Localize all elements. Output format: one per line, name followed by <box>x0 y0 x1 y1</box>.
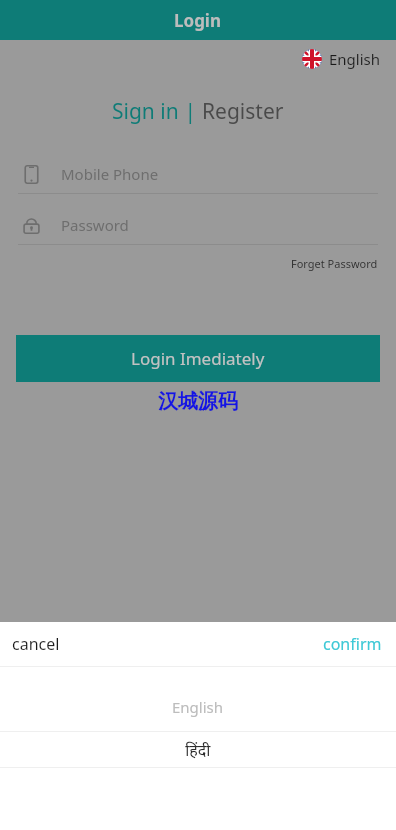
staticText: Login Imediately <box>131 347 265 370</box>
other: Password <box>22 216 41 235</box>
other: Phone <box>22 165 41 184</box>
staticText: | <box>179 97 202 126</box>
button[interactable]: Login Imediately <box>16 335 380 382</box>
staticText: English <box>329 49 381 69</box>
staticText: confirm <box>323 633 382 655</box>
staticText: 汉城源码 <box>158 389 238 414</box>
staticText: हिंदी <box>185 739 211 761</box>
staticText: English <box>172 697 224 717</box>
button[interactable]: Register <box>202 97 284 126</box>
button[interactable]: confirm <box>198 622 396 666</box>
button[interactable]: Forget Password <box>287 252 382 275</box>
button[interactable]: Sign in <box>112 97 179 126</box>
staticText: Login <box>174 9 222 32</box>
staticText: Password <box>61 215 129 235</box>
other: English language <box>302 49 322 69</box>
staticText: cancel <box>12 633 60 655</box>
button[interactable]: English language <box>299 46 384 72</box>
button[interactable]: English <box>0 683 396 731</box>
button[interactable]: हिंदी <box>0 732 396 767</box>
button[interactable]: Password <box>0 206 396 244</box>
button[interactable]: cancel <box>0 622 198 666</box>
button[interactable]: Phone <box>0 155 396 193</box>
staticText: Mobile Phone <box>61 164 159 184</box>
